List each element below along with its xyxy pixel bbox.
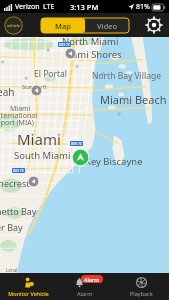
staticText: North Bay Village [92, 70, 161, 82]
button[interactable]: Vehicle location [72, 149, 89, 166]
button[interactable]: Video [85, 18, 129, 33]
staticText: Playback [130, 290, 153, 297]
staticText: North Miami [62, 35, 119, 48]
staticText: netto Bay [0, 205, 37, 217]
button[interactable]: Alarm [57, 273, 113, 300]
staticText: Miami Beach [100, 92, 167, 107]
button[interactable]: Vehicle [4, 16, 23, 35]
button[interactable]: Map [41, 18, 85, 33]
staticText: ami Shores [72, 48, 122, 61]
staticText: Video [97, 21, 118, 31]
staticText: Alarm [84, 276, 100, 283]
staticText: Lanal [6, 267, 18, 273]
staticText: Star Craft [22, 83, 47, 90]
staticText: International [0, 111, 37, 121]
staticText: Alarm [77, 290, 93, 297]
button[interactable]: Playback [113, 273, 169, 300]
staticText: BUS 72 [71, 142, 82, 146]
staticText: Monitor Vehicle [8, 290, 49, 297]
staticText: Key Biscayne [85, 155, 143, 168]
staticText: BUS 72 [13, 169, 24, 173]
staticText: El Portal [34, 68, 67, 80]
staticText: er Bay [0, 221, 23, 233]
staticText: BUS 72 [59, 43, 70, 47]
staticText: vehicle [7, 23, 20, 28]
staticText: 3:13 PM [70, 2, 99, 12]
staticText: Map [55, 21, 71, 31]
staticText: South Miami [14, 149, 71, 162]
staticText: 81% [136, 2, 150, 12]
button[interactable]: Settings [145, 16, 163, 34]
button[interactable]: Monitor Vehicle [0, 273, 57, 300]
staticText: Miami [17, 129, 61, 149]
staticText: LTE [43, 2, 55, 12]
staticText: eah [0, 85, 15, 99]
staticText: Miami [10, 104, 31, 114]
staticText: irport (MIA) [0, 118, 34, 128]
staticText: Verizon [15, 2, 40, 12]
staticText: inecrest [0, 177, 30, 189]
